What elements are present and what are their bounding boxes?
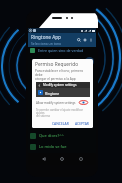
staticText: Selecciona un tono [31,41,62,46]
button[interactable]: Entre quien sino de verdad [30,47,94,54]
staticText: Entre quien sino de verdad [38,48,84,53]
button[interactable]: Search [77,38,81,42]
staticText: Modify system settings [43,83,77,87]
staticText: Ringtone [45,91,60,95]
staticText: Para establecer el tono, primero debe ot… [35,69,91,81]
staticText: ACEPTAR [75,121,89,125]
button[interactable]: Add ringtone [85,57,94,66]
staticText: Permiso Requerido [35,61,79,68]
button[interactable]: Home [59,156,65,162]
button[interactable]: Lo mido se fue [30,141,94,152]
button[interactable]: Recent apps [78,156,84,162]
button[interactable]: Que dices?^^ [30,130,94,141]
staticText: Allow modify system settings [36,101,76,105]
button[interactable]: ACEPTAR [73,120,91,126]
button[interactable]: Settings [83,38,87,42]
staticText: Ringtone App [31,34,61,40]
button[interactable]: More options [89,38,93,42]
staticText: Te permite cambiar el ajuste modificar a… [36,108,91,117]
staticText: CANCELAR [52,121,69,125]
staticText: Que dices?^^ [39,133,64,138]
button[interactable]: CANCELAR [50,120,71,126]
button[interactable]: Back [41,156,47,162]
staticText: Lo mido se fue [39,144,67,149]
